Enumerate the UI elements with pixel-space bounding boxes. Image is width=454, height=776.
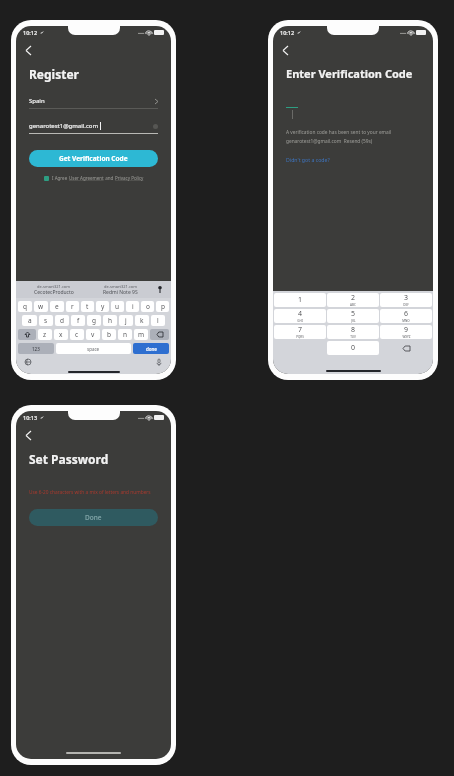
button[interactable]: Privacy Policy [115,175,144,181]
staticText: Redmi Note 9S [103,289,138,296]
staticText: b [107,330,111,339]
staticText: genarotest1@gmail.com Resend (59s) [286,138,373,145]
button[interactable]: b [102,329,116,340]
staticText: 2 [351,293,356,303]
button[interactable]: t [81,301,94,312]
staticText: GHI [297,319,303,323]
button[interactable]: j [119,315,133,326]
button[interactable]: 5 [327,309,379,323]
button[interactable]: Shift [18,329,36,340]
button[interactable]: genarotest1@gmail.com [29,119,158,134]
button[interactable]: Get Verification Code [29,150,158,167]
staticText: 5 [351,309,356,319]
button[interactable]: Agree checkbox [44,176,49,181]
staticText: p [161,302,165,311]
button[interactable]: 7 [274,325,326,339]
button[interactable]: 8 [327,325,379,339]
button[interactable]: de-smart321.com [21,284,87,296]
button[interactable]: y [96,301,109,312]
button[interactable]: w [34,301,48,312]
staticText: 0 [351,343,356,353]
button[interactable]: 4 [274,309,326,323]
staticText: genarotest1@gmail.com [29,122,99,130]
button[interactable]: 1 [274,293,326,307]
staticText: 10:12 [23,29,38,36]
staticText: Get Verification Code [59,154,128,163]
staticText: q [23,302,27,311]
staticText: o [146,302,150,311]
staticText: w [38,302,44,311]
button[interactable]: space [56,343,131,354]
staticText: Enter Verification Code [286,66,413,81]
staticText: r [71,302,74,311]
staticText: MNO [402,319,410,323]
staticText: 9 [404,325,409,335]
button[interactable]: Backspace [380,341,432,355]
button[interactable]: Spain [29,94,158,109]
button[interactable]: de-smart321.com [87,284,154,296]
staticText: Done [85,513,102,522]
button[interactable]: 9 [380,325,432,339]
button[interactable]: Backspace [150,329,169,340]
staticText: de-smart321.com [37,284,71,289]
staticText: 3 [404,293,409,303]
staticText: WXYZ [402,335,411,339]
staticText: Use 6-20 characters with a mix of letter… [29,489,151,496]
button[interactable]: 2 [327,293,379,307]
button[interactable]: i [126,301,139,312]
button[interactable]: z [38,329,52,340]
button[interactable]: User Agreement [69,175,104,181]
button[interactable]: Passwords [154,286,166,293]
button[interactable]: v [86,329,100,340]
button[interactable]: u [111,301,124,312]
button[interactable]: Didn't got a code? [286,156,330,163]
button[interactable]: l [151,315,165,326]
button[interactable]: Voice input [154,357,164,367]
button[interactable]: done [133,343,169,354]
button[interactable]: k [135,315,149,326]
button[interactable]: Change keyboard [23,357,33,367]
staticText: Set Password [29,451,109,467]
button[interactable]: q [18,301,32,312]
button[interactable]: 3 [380,293,432,307]
button[interactable]: f [71,315,85,326]
button[interactable]: e [50,301,64,312]
staticText: 6 [404,309,409,319]
staticText: DEF [403,303,409,307]
button[interactable]: a [22,315,37,326]
button[interactable]: c [70,329,84,340]
button[interactable]: m [134,329,148,340]
button[interactable]: 123 [18,343,54,354]
button[interactable]: r [66,301,79,312]
staticText: PQRS [296,335,304,339]
button[interactable]: 6 [380,309,432,323]
button[interactable]: d [55,315,69,326]
button[interactable]: 0 [327,341,379,355]
staticText: h [108,316,113,325]
staticText: t [86,302,89,311]
staticText: d [60,316,64,325]
staticText: Spain [29,97,45,105]
staticText: TUV [350,335,356,339]
staticText: n [123,330,128,339]
button[interactable]: Back [277,42,293,58]
button[interactable]: o [141,301,154,312]
button[interactable]: Back [20,42,36,58]
staticText: m [138,330,145,339]
button[interactable]: Done [29,509,158,526]
button[interactable]: p [156,301,169,312]
button[interactable]: g [87,315,101,326]
button[interactable]: Back [20,427,36,443]
staticText: A verification code has been sent to you… [286,129,392,136]
staticText: i [132,302,134,311]
button[interactable]: x [54,329,68,340]
staticText: j [125,316,127,325]
staticText: v [91,330,95,339]
staticText: 4 [298,309,303,319]
button[interactable]: h [103,315,117,326]
staticText: done [146,346,157,352]
button[interactable]: n [118,329,132,340]
button[interactable]: s [39,315,53,326]
staticText: c [75,330,79,339]
staticText: 8 [351,325,356,335]
